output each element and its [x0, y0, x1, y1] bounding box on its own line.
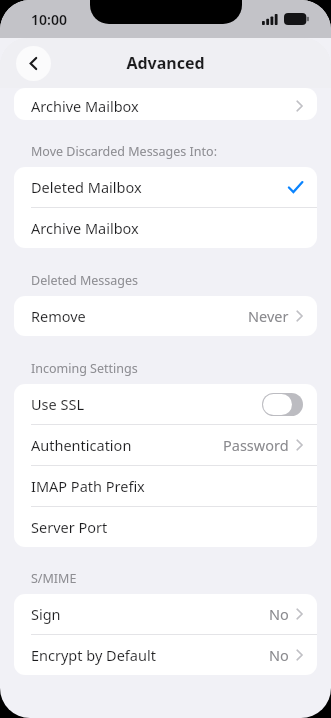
button[interactable]: Back: [16, 46, 51, 81]
button[interactable]: Remove: [14, 296, 317, 336]
staticText: Incoming Settings: [31, 360, 331, 377]
staticText: 10:00: [31, 10, 67, 29]
button[interactable]: Deleted Mailbox: [14, 167, 317, 207]
staticText: Authentication: [31, 435, 132, 455]
button[interactable]: Archive Mailbox: [14, 208, 317, 248]
button[interactable]: Encrypt by Default: [14, 635, 317, 675]
button[interactable]: Sign: [14, 594, 317, 634]
button[interactable]: IMAP Path Prefix: [14, 466, 317, 506]
staticText: Archive Mailbox: [31, 96, 139, 116]
staticText: IMAP Path Prefix: [31, 476, 145, 496]
button[interactable]: Authentication: [14, 425, 317, 465]
staticText: Move Discarded Messages Into:: [31, 143, 331, 160]
button[interactable]: Use SSL: [14, 384, 317, 424]
staticText: Archive Mailbox: [31, 218, 139, 238]
staticText: Password: [223, 435, 289, 455]
staticText: Advanced: [126, 52, 205, 74]
staticText: Sign: [31, 604, 61, 624]
button[interactable]: Archive Mailbox: [14, 92, 317, 120]
staticText: Server Port: [31, 517, 108, 537]
button[interactable]: Server Port: [14, 507, 317, 547]
staticText: Use SSL: [31, 394, 85, 414]
staticText: Deleted Mailbox: [31, 177, 142, 197]
staticText: S/MIME: [31, 570, 331, 587]
staticText: Deleted Messages: [31, 272, 331, 289]
staticText: Never: [248, 306, 289, 326]
button[interactable]: Use SSL: [262, 393, 303, 416]
staticText: No: [269, 604, 289, 624]
staticText: No: [269, 645, 289, 665]
staticText: Remove: [31, 306, 86, 326]
staticText: Encrypt by Default: [31, 645, 156, 665]
